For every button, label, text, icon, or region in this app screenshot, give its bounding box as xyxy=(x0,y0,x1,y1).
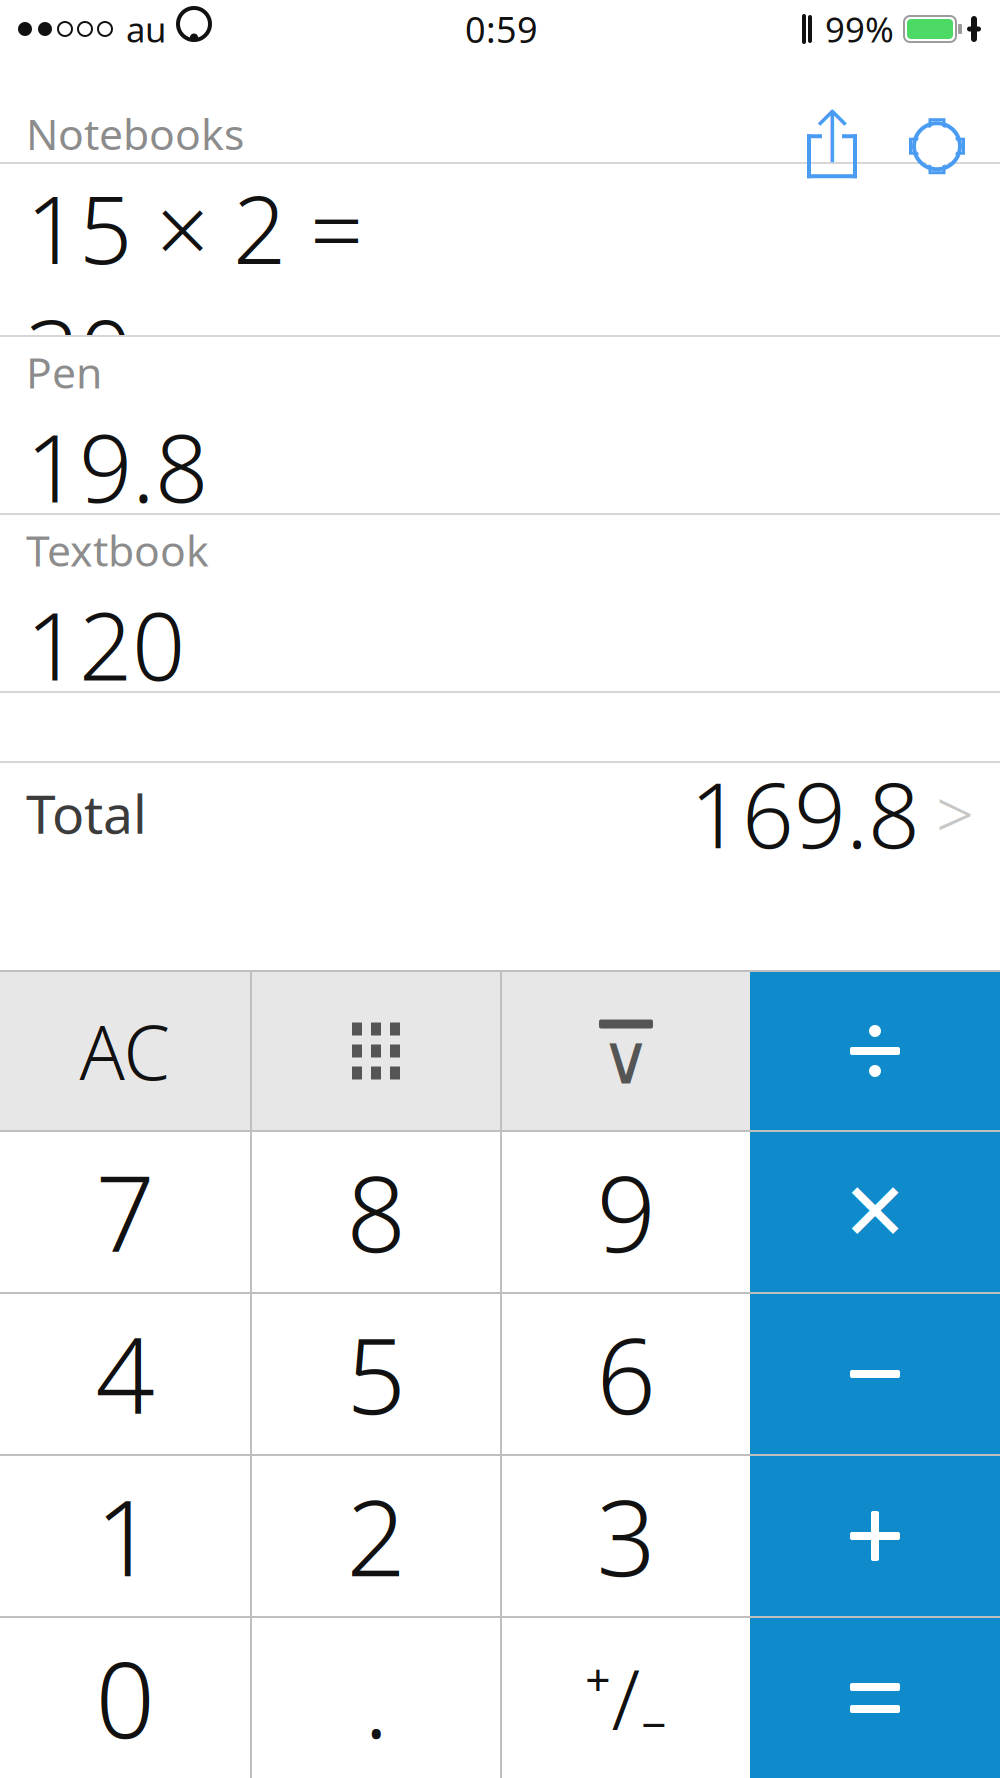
button[interactable]: Textbook xyxy=(0,515,1000,691)
button[interactable]: 6 xyxy=(502,1294,750,1454)
staticText: 9 xyxy=(596,1143,655,1281)
staticText: ∨ xyxy=(600,1020,651,1099)
staticText: 2 xyxy=(346,1467,405,1605)
staticText: 8 xyxy=(346,1143,405,1281)
button[interactable]: Equals xyxy=(750,1618,1000,1778)
button[interactable]: Pen xyxy=(0,337,1000,513)
staticText: Textbook xyxy=(26,522,209,578)
staticText: 15 × 2 = 30 xyxy=(26,166,363,414)
staticText: 99% xyxy=(825,6,894,52)
button[interactable]: 7 xyxy=(0,1132,250,1292)
button[interactable]: 4 xyxy=(0,1294,250,1454)
staticText: 0 xyxy=(95,1629,154,1767)
staticText: 19.8 xyxy=(26,404,208,528)
button[interactable]: Notebooks xyxy=(0,164,1000,335)
button[interactable]: Multiply xyxy=(750,1132,1000,1292)
button[interactable]: 9 xyxy=(502,1132,750,1292)
staticText: 1 xyxy=(95,1467,154,1605)
staticText: ⁺/₋ xyxy=(584,1643,667,1753)
button[interactable]: 8 xyxy=(252,1132,500,1292)
staticText: 4 xyxy=(95,1305,154,1443)
staticText: 3 xyxy=(596,1467,655,1605)
button[interactable]: Decimal point xyxy=(252,1618,500,1778)
button[interactable]: Plus minus xyxy=(502,1618,750,1778)
button[interactable]: Settings xyxy=(900,109,974,183)
button[interactable]: All clear xyxy=(0,972,250,1130)
button[interactable]: Plus xyxy=(750,1456,1000,1616)
staticText: au xyxy=(126,6,166,52)
button[interactable]: Minus xyxy=(750,1294,1000,1454)
staticText: Total xyxy=(26,778,147,848)
button[interactable]: Share xyxy=(798,105,866,187)
staticText: ↑ xyxy=(802,96,862,178)
button[interactable]: 3 xyxy=(502,1456,750,1616)
staticText: Pen xyxy=(26,344,102,400)
staticText: 5 xyxy=(346,1305,405,1443)
staticText: 7 xyxy=(95,1143,154,1281)
button[interactable]: Hide keyboard xyxy=(502,972,750,1130)
staticText: 0:59 xyxy=(465,5,538,53)
button[interactable]: 2 xyxy=(252,1456,500,1616)
staticText: > xyxy=(936,769,974,857)
staticText: 6 xyxy=(596,1305,655,1443)
staticText: AC xyxy=(79,1001,170,1101)
button[interactable]: 1 xyxy=(0,1456,250,1616)
button[interactable]: Keypad xyxy=(252,972,500,1130)
staticText: 169.8 xyxy=(690,753,920,873)
staticText: 120 xyxy=(26,582,185,706)
staticText: Notebooks xyxy=(26,105,244,162)
button[interactable]: 0 xyxy=(0,1618,250,1778)
staticText: . xyxy=(363,1629,388,1767)
staticText: ✕ xyxy=(841,1167,908,1257)
button[interactable]: Divide xyxy=(750,972,1000,1130)
button[interactable]: 5 xyxy=(252,1294,500,1454)
button[interactable]: Total xyxy=(0,763,1000,863)
